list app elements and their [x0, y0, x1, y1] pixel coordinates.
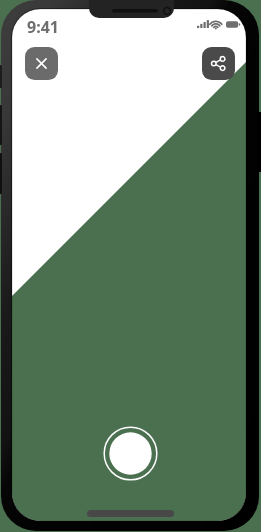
- button[interactable]: Share: [202, 47, 235, 80]
- button[interactable]: Close: [25, 47, 58, 80]
- staticText: 9:41: [27, 16, 59, 38]
- button[interactable]: Capture photo: [102, 425, 159, 482]
